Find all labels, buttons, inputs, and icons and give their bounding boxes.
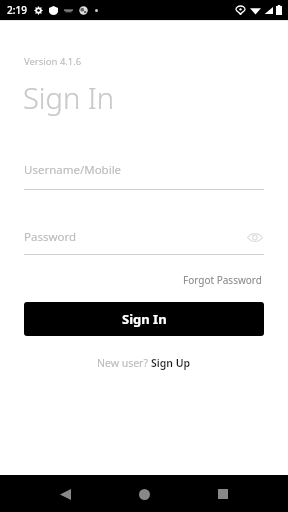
staticText: Sign Up [151, 356, 191, 370]
button[interactable]: Recent apps [206, 477, 240, 511]
button[interactable]: Back [48, 477, 82, 511]
staticText: Version 4.1.6 [24, 55, 82, 68]
staticText: 2:19 [7, 3, 27, 17]
button[interactable]: Show password [246, 228, 264, 246]
button[interactable]: Sign In [24, 302, 264, 336]
button[interactable]: Username/Mobile [24, 162, 264, 190]
staticText: Username/Mobile [24, 162, 122, 178]
staticText: Sign In [23, 78, 115, 117]
button[interactable]: Sign Up [151, 356, 191, 370]
button[interactable]: Forgot Password [181, 271, 264, 289]
staticText: Password [24, 229, 246, 245]
staticText: Forgot Password [183, 273, 262, 287]
staticText: New user? [97, 356, 151, 370]
staticText: Sign In [122, 310, 167, 328]
button[interactable]: Home [127, 477, 161, 511]
